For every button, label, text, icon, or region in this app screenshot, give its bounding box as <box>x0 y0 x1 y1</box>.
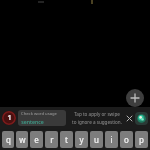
staticText: r <box>50 134 54 145</box>
staticText: w <box>19 134 26 145</box>
button[interactable]: Add <box>126 89 144 107</box>
button[interactable]: p <box>135 131 148 148</box>
button[interactable]: w <box>16 131 28 148</box>
button[interactable]: Dismiss <box>124 113 134 123</box>
staticText: i <box>110 134 113 145</box>
button[interactable]: 1 issue <box>2 111 16 125</box>
staticText: t <box>65 134 68 145</box>
button[interactable]: r <box>45 131 58 148</box>
button[interactable]: q <box>2 131 14 148</box>
staticText: Tap to apply or swipe <box>74 111 120 117</box>
staticText: to ignore a suggestion. <box>72 119 122 125</box>
staticText: q <box>6 134 11 145</box>
button[interactable]: t <box>60 131 73 148</box>
button[interactable]: u <box>90 131 103 148</box>
button[interactable]: Check word usage <box>18 110 66 126</box>
button[interactable]: Tap to apply or swipe <box>70 111 124 125</box>
staticText: e <box>34 134 39 145</box>
staticText: Check word usage <box>21 111 57 117</box>
staticText: 1 <box>7 113 12 123</box>
staticText: p <box>139 134 144 145</box>
button[interactable]: i <box>105 131 118 148</box>
button[interactable]: y <box>75 131 88 148</box>
staticText: sentence <box>21 118 44 125</box>
staticText: u <box>94 134 99 145</box>
staticText: y <box>79 134 84 145</box>
button[interactable]: o <box>120 131 133 148</box>
button[interactable]: Grammar assistant <box>135 112 148 125</box>
staticText: o <box>124 134 129 145</box>
button[interactable]: e <box>30 131 43 148</box>
